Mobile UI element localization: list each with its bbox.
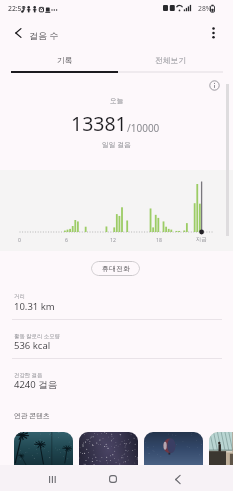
staticText: 12 [110,236,116,243]
staticText: 0 [18,236,21,243]
button[interactable]: Recent apps [40,467,64,491]
button[interactable]: Palm trees at night [14,432,73,465]
button[interactable]: Milky way [79,432,138,465]
button[interactable]: 기록 [11,48,118,72]
staticText: 연관 콘텐츠 [14,411,50,420]
button[interactable]: Glass house [209,432,233,465]
staticText: 13381 [71,110,127,137]
staticText: 6 [65,236,68,243]
staticText: 일일 걸음 [102,140,131,149]
staticText: 10.31 km [14,300,55,313]
button[interactable]: Hot air balloon [144,432,203,465]
staticText: 지금 [196,236,207,243]
staticText: 건강한 걸음 [14,371,43,378]
button[interactable]: 거리 [0,287,233,326]
button[interactable]: More options [202,22,224,44]
staticText: /10000 [127,121,160,135]
staticText: 휴대전화 [102,264,130,273]
staticText: 걸음 수 [29,29,59,41]
staticText: 18 [156,236,162,243]
staticText: 기록 [57,55,73,65]
staticText: 22:59 [8,4,26,13]
staticText: 활동 칼로리 소모량 [14,332,60,339]
button[interactable]: Information [206,77,222,93]
button[interactable]: 활동 칼로리 소모량 [0,326,233,365]
button[interactable]: Back [7,22,29,44]
button[interactable]: 전체보기 [118,48,223,72]
button[interactable]: Back [166,467,190,491]
staticText: 28% [198,4,212,13]
button[interactable]: 건강한 걸음 [0,365,233,404]
staticText: 거리 [14,293,25,300]
staticText: 536 kcal [14,339,51,352]
staticText: 전체보기 [155,55,187,65]
staticText: 오늘 [110,96,124,105]
button[interactable]: 휴대전화 [91,261,140,276]
button[interactable]: Home [101,467,125,491]
staticText: 4240 걸음 [14,378,58,391]
